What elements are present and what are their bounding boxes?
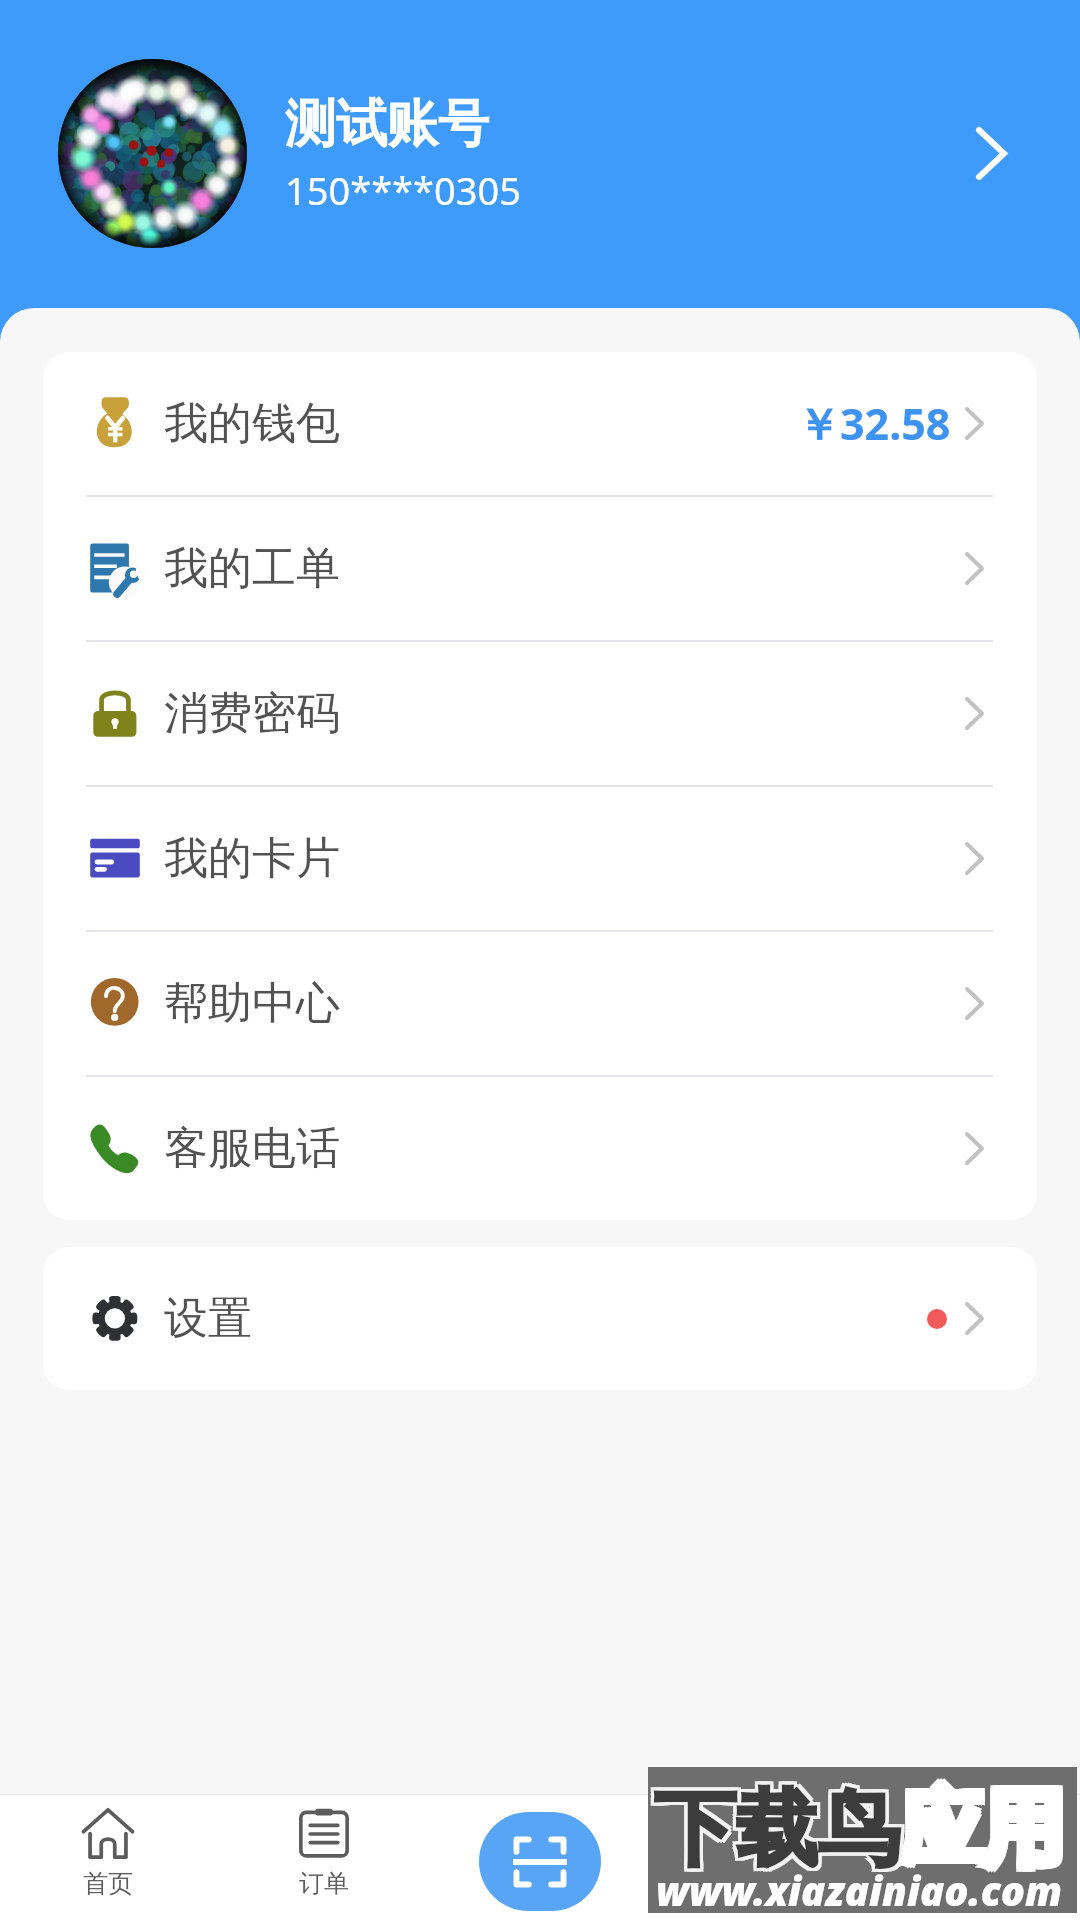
- staticText: 下载鸟: [654, 1778, 900, 1881]
- button[interactable]: 订单: [216, 1808, 432, 1907]
- staticText: 我的工单: [164, 541, 340, 596]
- staticText: 下载鸟: [657, 1775, 903, 1878]
- button[interactable]: 首页: [0, 1808, 216, 1907]
- staticText: 应用: [903, 1778, 1067, 1881]
- staticText: 帮助中心: [164, 976, 340, 1031]
- staticText: 下载鸟: [651, 1775, 897, 1878]
- button[interactable]: 客服电话: [43, 1077, 1037, 1220]
- staticText: 我的: [947, 1868, 997, 1899]
- staticText: 应用: [903, 1781, 1067, 1884]
- button[interactable]: 我的工单: [43, 497, 1037, 640]
- button[interactable]: 帮助中心: [43, 932, 1037, 1075]
- button[interactable]: 我的卡片: [43, 787, 1037, 930]
- button[interactable]: Scan QR code: [479, 1812, 601, 1911]
- button[interactable]: 消费密码: [43, 642, 1037, 785]
- button[interactable]: 我的钱包: [43, 352, 1037, 495]
- staticText: 下载鸟: [651, 1778, 897, 1881]
- staticText: 我的卡片: [164, 831, 340, 886]
- staticText: 下载鸟: [657, 1781, 903, 1884]
- staticText: www.xiazainiao.com: [656, 1863, 1063, 1917]
- staticText: ￥32.58: [797, 394, 951, 453]
- staticText: 发现: [731, 1868, 781, 1899]
- staticText: 消费密码: [164, 686, 340, 741]
- staticText: 设置: [164, 1291, 252, 1346]
- staticText: 下载鸟: [654, 1775, 900, 1878]
- staticText: 下载鸟: [654, 1781, 900, 1884]
- staticText: 应用: [897, 1775, 1061, 1878]
- staticText: 150****0305: [285, 164, 521, 216]
- staticText: 应用: [900, 1778, 1064, 1881]
- button[interactable]: 测试账号: [0, 0, 1080, 307]
- staticText: 客服电话: [164, 1121, 340, 1176]
- button[interactable]: 设置: [43, 1247, 1037, 1390]
- button[interactable]: 我的: [864, 1808, 1080, 1907]
- staticText: 应用: [900, 1781, 1064, 1884]
- staticText: 订单: [299, 1868, 349, 1899]
- staticText: 测试账号: [285, 92, 489, 156]
- staticText: 首页: [83, 1868, 133, 1899]
- staticText: 下载鸟: [657, 1778, 903, 1881]
- staticText: 下载鸟: [651, 1781, 897, 1884]
- staticText: 应用: [903, 1775, 1067, 1878]
- staticText: 应用: [897, 1778, 1061, 1881]
- staticText: 应用: [897, 1781, 1061, 1884]
- button[interactable]: 发现: [648, 1808, 864, 1907]
- staticText: 应用: [900, 1775, 1064, 1878]
- staticText: 我的钱包: [164, 396, 340, 451]
